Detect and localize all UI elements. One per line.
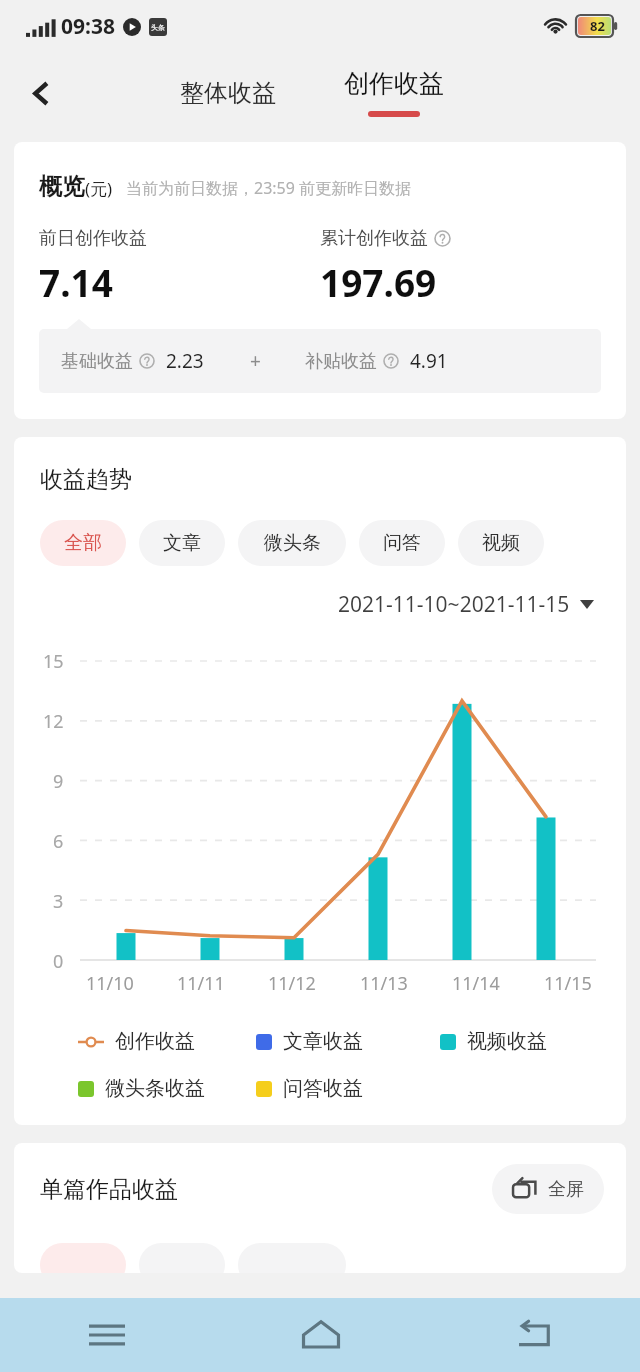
staticText: 15 [43, 649, 64, 674]
staticText: 整体收益 [180, 78, 276, 108]
staticText: 全屏 [548, 1178, 584, 1201]
staticText: 12 [43, 709, 64, 734]
button[interactable]: 基础收益 [39, 329, 601, 393]
staticText: 0 [53, 949, 64, 974]
staticText: 收益趋势 [40, 465, 132, 494]
button[interactable]: 概览 [14, 142, 626, 419]
staticText: 82 [590, 17, 605, 35]
staticText: 2021-11-10~2021-11-15 [338, 590, 570, 619]
staticText: 问答收益 [283, 1076, 363, 1101]
button[interactable]: Home [214, 1298, 427, 1372]
staticText: 197.69 [320, 257, 437, 307]
staticText: 6 [53, 829, 64, 854]
button[interactable]: 视频 [458, 520, 544, 566]
staticText: 11/10 [86, 971, 134, 996]
staticText: 3 [53, 889, 64, 914]
staticText: 补贴收益 [305, 350, 377, 373]
button[interactable]: 2021-11-10~2021-11-15 [14, 590, 594, 619]
staticText: 视频收益 [467, 1029, 547, 1054]
button[interactable]: Back [14, 66, 68, 120]
staticText: 创作收益 [115, 1029, 195, 1054]
staticText: 11/15 [544, 971, 592, 996]
button[interactable]: 问答 [359, 520, 445, 566]
staticText: 头条 [151, 23, 165, 32]
staticText: 文章收益 [283, 1029, 363, 1054]
staticText: 7.14 [39, 257, 113, 307]
button[interactable]: 全屏 [492, 1164, 604, 1214]
staticText: 微头条收益 [105, 1076, 205, 1101]
staticText: 基础收益 [61, 350, 133, 373]
staticText: 当前为前日数据，23:59 前更新昨日数据 [126, 177, 412, 199]
staticText: 11/13 [360, 971, 408, 996]
button[interactable]: 创作收益 [336, 52, 452, 134]
staticText: + [250, 348, 261, 374]
staticText: 11/11 [177, 971, 225, 996]
button[interactable]: Back [427, 1298, 640, 1372]
staticText: 概览 [39, 172, 85, 201]
staticText: 微头条 [264, 531, 321, 555]
staticText: 前日创作收益 [39, 227, 147, 250]
button[interactable]: 文章 [139, 520, 225, 566]
staticText: 累计创作收益 [320, 227, 428, 250]
staticText: 09:38 [61, 12, 115, 41]
staticText: 问答 [383, 531, 421, 555]
staticText: 9 [53, 769, 64, 794]
staticText: 文章 [163, 531, 201, 555]
staticText: 11/14 [452, 971, 500, 996]
staticText: 单篇作品收益 [40, 1175, 178, 1204]
staticText: 2.23 [166, 348, 204, 374]
button[interactable]: 微头条 [238, 520, 346, 566]
staticText: 11/12 [268, 971, 316, 996]
button[interactable]: Recent apps [0, 1298, 214, 1372]
button[interactable]: 整体收益 [172, 52, 284, 134]
staticText: 全部 [64, 531, 102, 555]
staticText: 4.91 [410, 348, 448, 374]
staticText: 创作收益 [344, 68, 444, 99]
button[interactable]: 全部 [40, 520, 126, 566]
staticText: 视频 [482, 531, 520, 555]
staticText: (元) [85, 177, 113, 200]
